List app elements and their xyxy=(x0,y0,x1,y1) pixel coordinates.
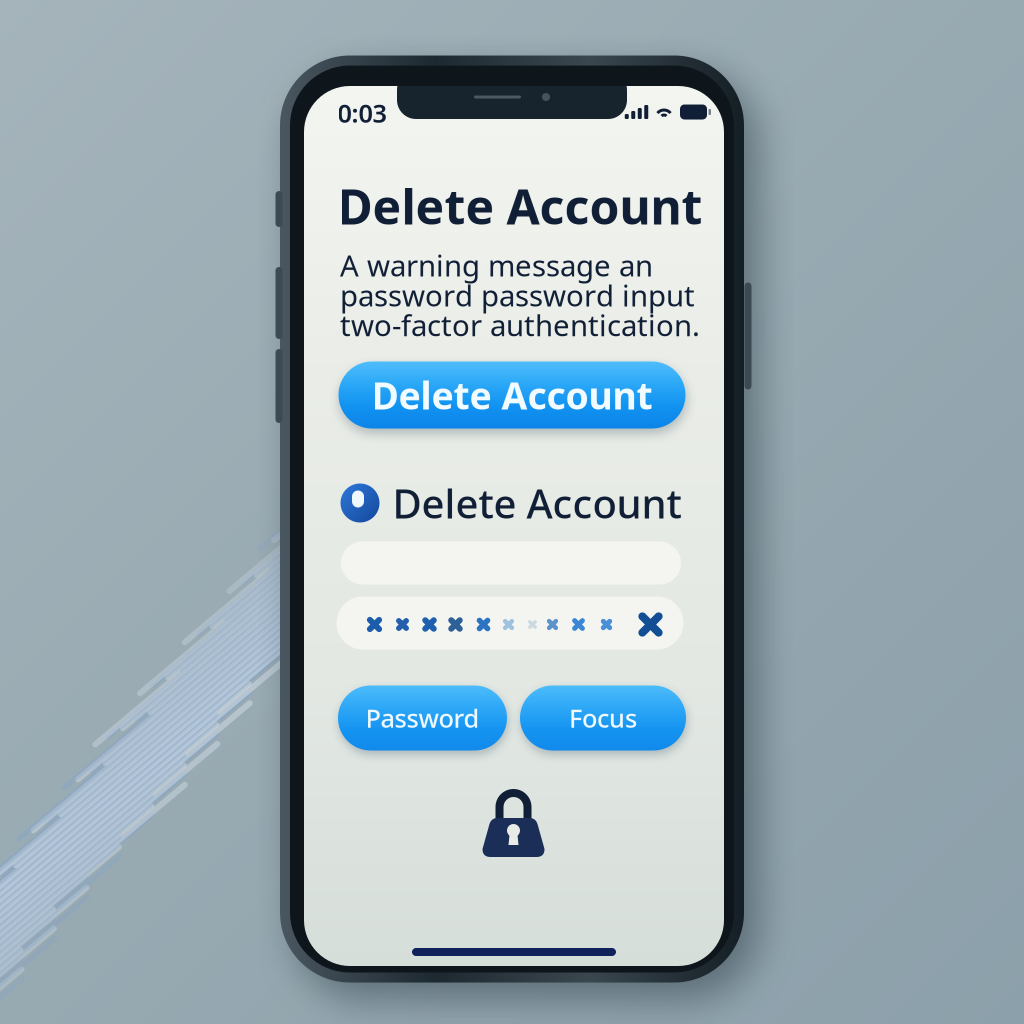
button[interactable]: Password xyxy=(338,685,507,750)
staticText: Delete Account xyxy=(337,174,702,238)
staticText: 0:03 xyxy=(337,96,386,130)
button[interactable]: Delete Account xyxy=(338,361,685,428)
staticText: Delete Account xyxy=(392,476,681,529)
staticText: password password input xyxy=(340,275,695,314)
button[interactable]: Delete Account xyxy=(340,476,681,529)
staticText: A warning message an xyxy=(340,246,653,285)
staticText: Delete Account xyxy=(371,370,652,420)
staticText: Focus xyxy=(569,701,637,735)
staticText: Password xyxy=(365,701,479,735)
button[interactable]: Focus xyxy=(520,685,686,750)
staticText: two-factor authentication. xyxy=(340,305,700,344)
